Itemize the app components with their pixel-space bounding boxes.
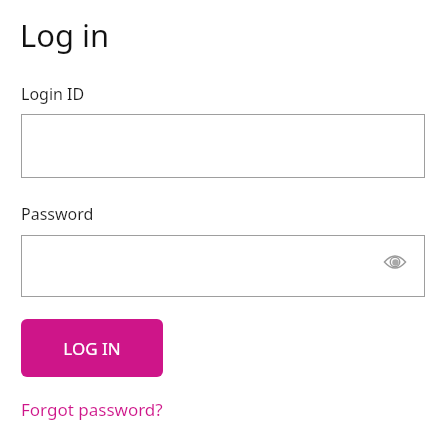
button[interactable] [21, 114, 425, 178]
staticText: LOG IN [63, 337, 121, 360]
button[interactable]: Forgot password? [21, 398, 163, 421]
button[interactable]: LOG IN [21, 319, 163, 377]
staticText: Password [21, 203, 94, 225]
button[interactable] [21, 235, 425, 297]
staticText: Login ID [21, 83, 85, 105]
staticText: Log in [20, 14, 110, 56]
staticText: Forgot password? [21, 398, 163, 421]
button[interactable]: Show password [381, 248, 409, 276]
